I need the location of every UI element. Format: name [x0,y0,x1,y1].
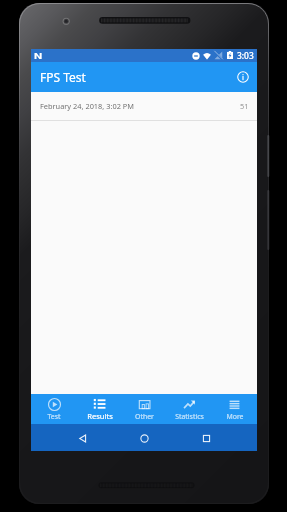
staticText: Statistics [175,412,204,421]
staticText: FPS Test [40,69,86,85]
staticText: Test [47,412,61,421]
button[interactable]: Info [232,66,254,88]
button[interactable]: Home [133,427,155,449]
button[interactable]: Test [31,394,77,424]
button[interactable]: February 24, 2018, 3:02 PM [31,92,257,121]
button[interactable]: Back [71,427,93,449]
button[interactable]: Results [77,394,122,424]
staticText: 51 [240,101,249,111]
staticText: 3:03 [237,50,254,61]
button[interactable]: Other [122,394,167,424]
staticText: February 24, 2018, 3:02 PM [40,101,134,111]
button[interactable]: Statistics [167,394,212,424]
staticText: More [226,412,244,421]
button[interactable]: Recents [195,427,217,449]
staticText: Results [87,411,113,421]
button[interactable]: More [212,394,257,424]
staticText: Other [135,412,154,421]
